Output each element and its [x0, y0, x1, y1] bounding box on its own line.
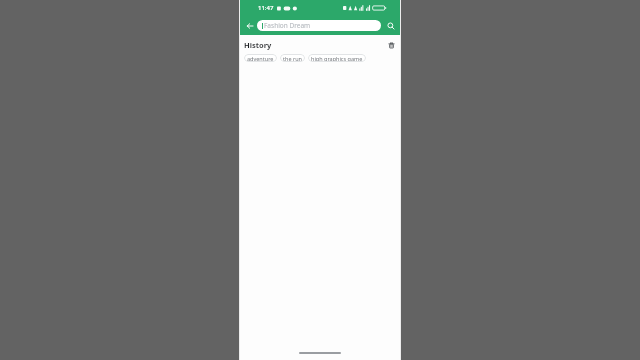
staticText: adventure [247, 55, 274, 62]
button[interactable]: adventure [244, 54, 277, 62]
staticText: Fashion Dream [264, 21, 311, 30]
staticText: the run [283, 55, 302, 62]
button[interactable]: Fashion Dream [257, 20, 381, 31]
button[interactable]: Clear history [385, 39, 397, 51]
staticText: high graphics game [311, 55, 363, 62]
button[interactable]: high graphics game [308, 54, 366, 62]
staticText: 11:47 [258, 4, 274, 12]
staticText: History [244, 40, 272, 50]
button[interactable]: Search [383, 18, 398, 33]
button[interactable]: the run [280, 54, 305, 62]
button[interactable]: Back [242, 18, 257, 33]
